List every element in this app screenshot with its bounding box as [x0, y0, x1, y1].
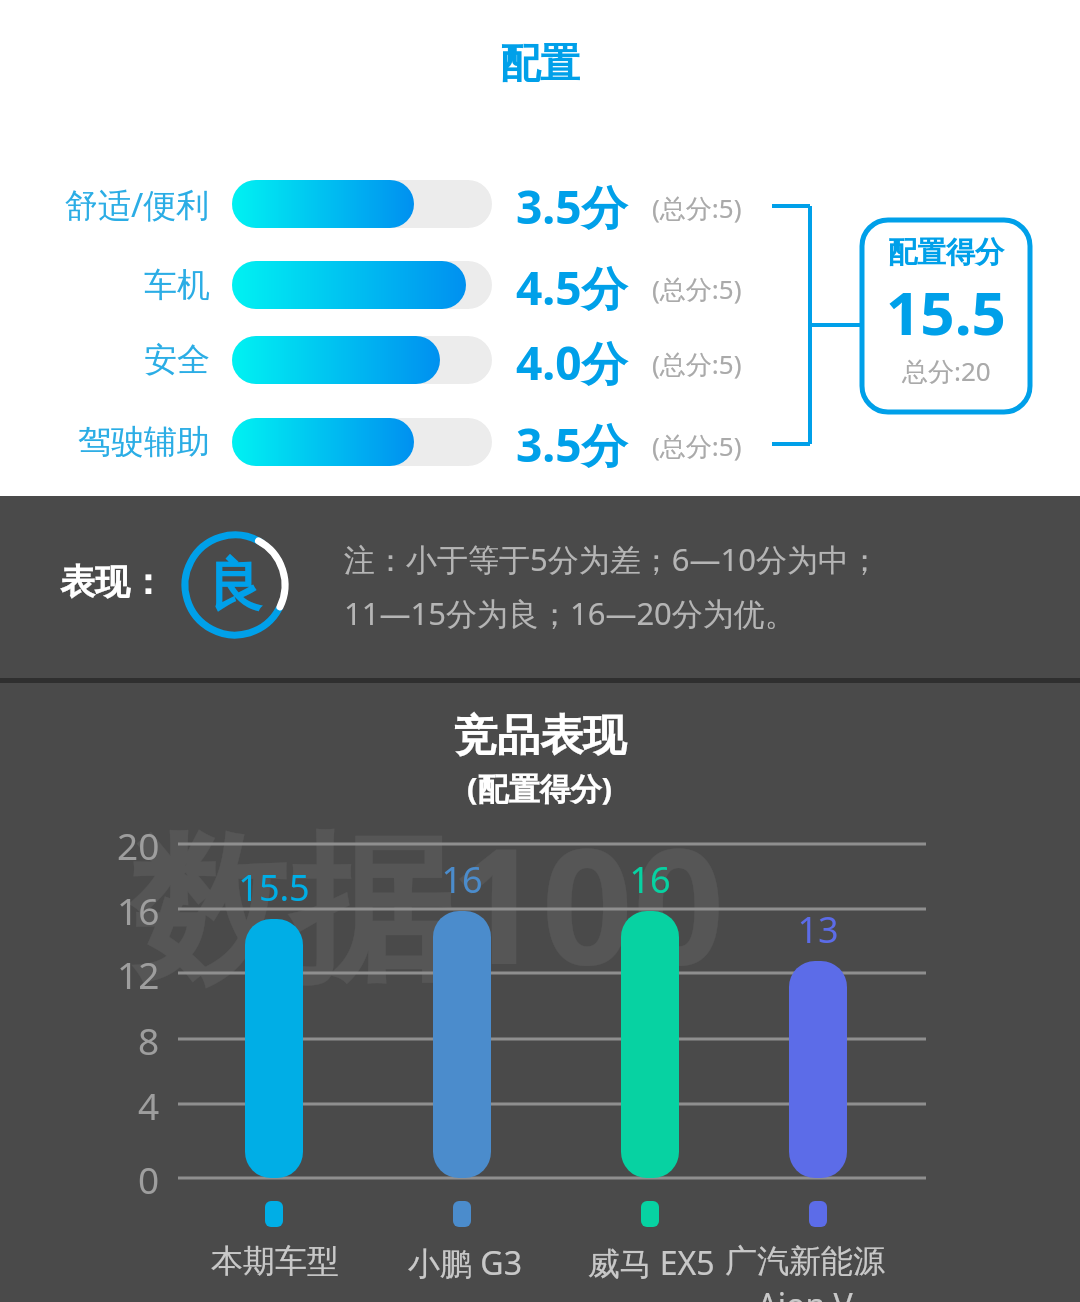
- staticText: 16: [413, 855, 511, 904]
- staticText: (总分:5): [652, 428, 742, 464]
- staticText: 安全: [144, 339, 210, 381]
- staticText: 4.5分: [516, 256, 628, 319]
- staticText: 20: [117, 820, 160, 868]
- staticText: 驾驶辅助: [78, 421, 210, 463]
- button[interactable]: 驾驶辅助: [20, 418, 210, 466]
- staticText: 广汽新能源Aion V: [710, 1241, 900, 1302]
- staticText: 0: [138, 1154, 160, 1202]
- staticText: 11—15分为良；16—20分为优。: [344, 592, 796, 634]
- staticText: 表现：: [60, 560, 165, 604]
- staticText: (总分:5): [652, 271, 742, 307]
- staticText: 3.5分: [516, 413, 628, 476]
- button[interactable]: 车机: [20, 261, 210, 309]
- staticText: 总分:20: [902, 353, 991, 389]
- staticText: (配置得分): [467, 767, 613, 809]
- button[interactable]: 表现评级 良: [180, 530, 290, 640]
- staticText: 4: [138, 1080, 160, 1128]
- staticText: 威马 EX5: [556, 1241, 746, 1285]
- staticText: 12: [117, 949, 160, 997]
- staticText: 配置得分: [888, 234, 1004, 271]
- staticText: 舒适/便利: [65, 182, 210, 227]
- staticText: (总分:5): [652, 346, 742, 382]
- staticText: 小鹏 G3: [370, 1241, 560, 1285]
- staticText: 车机: [144, 264, 210, 306]
- staticText: 注：小于等于5分为差；6—10分为中；: [344, 538, 880, 580]
- button[interactable]: 配置得分: [862, 220, 1030, 412]
- staticText: 8: [138, 1015, 160, 1063]
- staticText: 15.5: [886, 271, 1006, 353]
- staticText: 本期车型: [180, 1241, 370, 1281]
- staticText: 4.0分: [516, 331, 628, 394]
- staticText: 竞品表现: [454, 709, 626, 763]
- staticText: 15.5: [225, 863, 323, 912]
- staticText: 数据100: [130, 793, 725, 1012]
- button[interactable]: [789, 961, 847, 1178]
- button[interactable]: 舒适/便利: [20, 180, 210, 228]
- staticText: 良: [207, 550, 263, 621]
- staticText: (总分:5): [652, 190, 742, 226]
- staticText: 16: [601, 855, 699, 904]
- staticText: 16: [117, 885, 160, 933]
- staticText: 配置: [0, 38, 1080, 88]
- staticText: 13: [769, 905, 867, 954]
- button[interactable]: [245, 919, 303, 1178]
- button[interactable]: 安全: [20, 336, 210, 384]
- button[interactable]: [433, 911, 491, 1178]
- button[interactable]: [621, 911, 679, 1178]
- staticText: 3.5分: [516, 175, 628, 238]
